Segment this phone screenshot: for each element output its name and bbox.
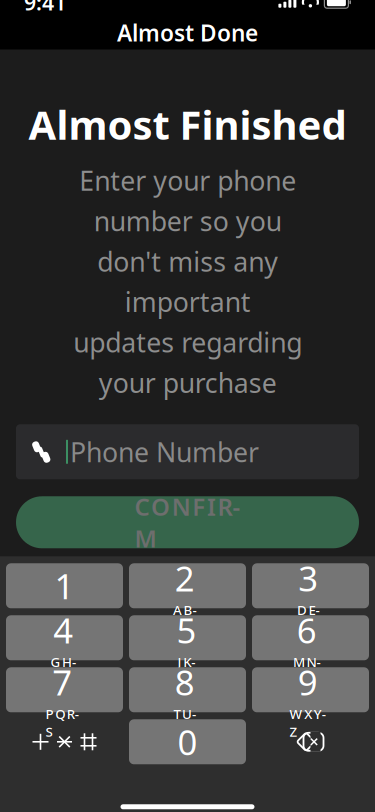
staticText: 1	[54, 563, 74, 609]
staticText: Phone Number	[70, 434, 259, 469]
staticText: PQRS	[46, 705, 79, 740]
button[interactable]: 0	[129, 719, 246, 764]
staticText: 3	[298, 555, 318, 601]
staticText: Almost Finished	[28, 98, 346, 151]
staticText: 2	[175, 555, 195, 601]
staticText: 9:41	[24, 0, 66, 16]
staticText: GHI	[50, 653, 76, 688]
staticText: Enter your phone number so you don't mis…	[73, 163, 302, 400]
staticText: 6	[297, 607, 317, 653]
button[interactable]: 3	[252, 563, 369, 608]
staticText: 4	[53, 607, 73, 653]
button[interactable]: 7	[6, 667, 123, 712]
staticText: ABC	[173, 601, 196, 636]
button[interactable]: Phone Number	[0, 424, 375, 479]
staticText: TUV	[173, 705, 196, 740]
staticText: MNO	[293, 653, 320, 688]
button[interactable]: CONFIRM	[0, 496, 375, 548]
button[interactable]: Delete	[252, 719, 369, 764]
staticText: WXYZ	[290, 705, 326, 740]
staticText: 0	[177, 719, 197, 765]
staticText: 5	[176, 607, 196, 653]
staticText: Almost Done	[117, 18, 258, 48]
button[interactable]: 2	[129, 563, 246, 608]
button[interactable]: 9	[252, 667, 369, 712]
button[interactable]: 5	[129, 615, 246, 660]
button[interactable]: 8	[129, 667, 246, 712]
staticText: 7	[52, 659, 72, 705]
button[interactable]: 1	[6, 563, 123, 608]
staticText: 9	[298, 659, 318, 705]
button[interactable]: 6	[252, 615, 369, 660]
staticText: CONFIRM	[134, 490, 240, 554]
button[interactable]: Plus, star and pound symbols	[6, 719, 123, 764]
staticText: 8	[175, 659, 195, 705]
staticText: JKL	[178, 653, 195, 688]
button[interactable]: 4	[6, 615, 123, 660]
staticText: DEF	[297, 601, 319, 636]
